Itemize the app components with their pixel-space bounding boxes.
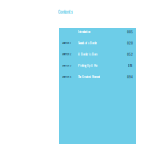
button[interactable] bbox=[59, 28, 136, 39]
staticText: A Border is Born bbox=[78, 52, 97, 56]
staticText: Introduction bbox=[78, 29, 90, 34]
staticText: Picking Up A Pen bbox=[78, 63, 97, 68]
staticText: 005 bbox=[127, 29, 133, 34]
staticText: 020 bbox=[127, 40, 133, 45]
staticText: 078 bbox=[127, 63, 132, 68]
staticText: CHAPTER 2 bbox=[62, 52, 71, 56]
staticText: CHAPTER 4 bbox=[62, 75, 71, 79]
staticText: Contents bbox=[58, 9, 73, 15]
staticText: CHAPTER 1 bbox=[62, 41, 71, 45]
staticText: 094 bbox=[127, 74, 133, 79]
button[interactable]: CHAPTER 3 bbox=[59, 62, 136, 73]
button[interactable]: CHAPTER 1 bbox=[59, 39, 136, 51]
staticText: The Greatest Moment bbox=[78, 75, 100, 79]
button[interactable]: CHAPTER 4 bbox=[59, 73, 136, 84]
staticText: Sounds of a Border bbox=[78, 41, 97, 45]
button[interactable]: CHAPTER 2 bbox=[59, 51, 136, 62]
staticText: 052 bbox=[127, 52, 133, 57]
staticText: CHAPTER 3 bbox=[62, 64, 71, 67]
